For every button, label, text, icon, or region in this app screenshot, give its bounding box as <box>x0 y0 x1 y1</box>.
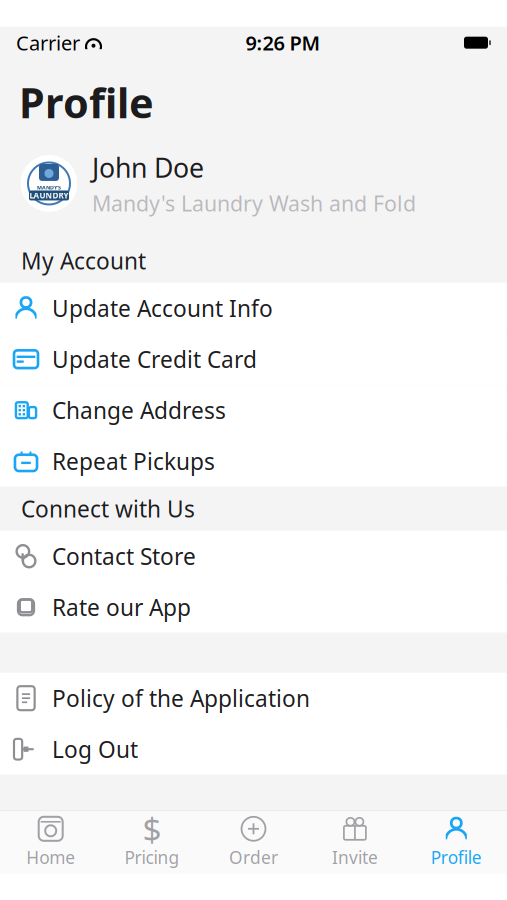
staticText: Repeat Pickups <box>52 446 215 476</box>
button[interactable]: Home <box>0 811 101 873</box>
staticText: John Doe <box>92 150 204 185</box>
button[interactable]: Repeat Pickups <box>0 436 507 487</box>
button[interactable]: Update Credit Card <box>0 334 507 385</box>
staticText: $ <box>143 807 162 851</box>
staticText: Update Credit Card <box>52 344 257 374</box>
button[interactable]: Invite <box>304 811 406 873</box>
staticText: Policy of the Application <box>52 683 310 713</box>
button[interactable]: Log Out <box>0 724 507 775</box>
button[interactable]: $ <box>101 811 203 873</box>
staticText: Order <box>229 846 278 869</box>
staticText: Change Address <box>52 395 226 425</box>
button[interactable]: Change Address <box>0 385 507 436</box>
staticText: Invite <box>332 846 378 869</box>
staticText: 9:26 PM <box>245 29 320 56</box>
staticText: Home <box>26 846 75 869</box>
staticText: Contact Store <box>52 541 196 571</box>
button[interactable]: Policy of the Application <box>0 673 507 724</box>
button[interactable]: Contact Store <box>0 531 507 582</box>
staticText: MANDY'S <box>37 184 61 191</box>
button[interactable]: Rate our App <box>0 582 507 633</box>
staticText: LAUNDRY <box>29 190 68 201</box>
button[interactable]: Update Account Info <box>0 283 507 334</box>
staticText: Pricing <box>125 846 180 869</box>
button[interactable]: Profile <box>406 811 507 873</box>
button[interactable]: Order <box>203 811 304 873</box>
staticText: Mandy's Laundry Wash and Fold <box>92 189 416 217</box>
staticText: Rate our App <box>52 592 191 622</box>
staticText: Profile <box>19 75 154 130</box>
staticText: Connect with Us <box>21 494 195 524</box>
staticText: My Account <box>21 246 146 276</box>
staticText: Update Account Info <box>52 293 273 323</box>
button[interactable]: MANDY'S <box>0 130 507 227</box>
staticText: Carrier <box>16 29 80 56</box>
staticText: Profile <box>431 846 482 869</box>
staticText: Log Out <box>52 734 138 764</box>
